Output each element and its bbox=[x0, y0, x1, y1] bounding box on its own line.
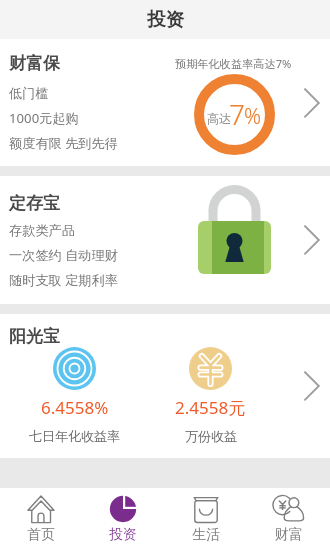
staticText: % bbox=[244, 102, 262, 131]
staticText: 财富保 bbox=[9, 53, 60, 74]
button[interactable]: 财富 bbox=[247, 488, 330, 550]
button[interactable]: 定存宝 bbox=[0, 176, 330, 304]
button[interactable]: 首页 bbox=[0, 488, 82, 550]
staticText: 高达 bbox=[207, 111, 231, 126]
button[interactable]: 投资 bbox=[82, 488, 164, 550]
staticText: 定存宝 bbox=[9, 193, 60, 214]
staticText: 首页 bbox=[27, 526, 55, 544]
button[interactable]: 生活 bbox=[164, 488, 247, 550]
staticText: 万份收益 bbox=[185, 428, 237, 444]
staticText: 低门槛 bbox=[9, 85, 49, 102]
staticText: 生活 bbox=[192, 526, 220, 544]
staticText: 6.4558% bbox=[41, 396, 109, 419]
staticText: 投资 bbox=[147, 8, 184, 31]
button[interactable]: 阳光宝 bbox=[0, 314, 330, 458]
staticText: 额度有限 先到先得 bbox=[9, 134, 118, 152]
staticText: 财富 bbox=[275, 526, 303, 544]
staticText: 存款类产品 bbox=[9, 222, 75, 239]
staticText: 预期年化收益率高达7% bbox=[175, 56, 292, 71]
staticText: 阳光宝 bbox=[9, 326, 60, 347]
staticText: 2.4558元 bbox=[175, 396, 246, 419]
staticText: 7 bbox=[229, 95, 245, 133]
staticText: 投资 bbox=[109, 526, 137, 544]
staticText: 1000元起购 bbox=[9, 109, 79, 127]
staticText: 七日年化收益率 bbox=[29, 428, 120, 444]
staticText: 一次签约 自动理财 bbox=[9, 246, 118, 264]
button[interactable]: 财富保 bbox=[0, 39, 330, 166]
staticText: 随时支取 定期利率 bbox=[9, 271, 118, 289]
